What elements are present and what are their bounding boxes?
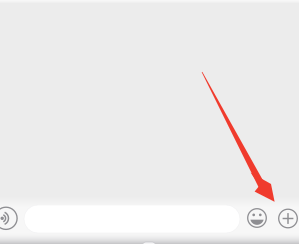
button[interactable]: Emoji [247, 208, 267, 228]
button[interactable]: Add attachment [278, 208, 298, 228]
